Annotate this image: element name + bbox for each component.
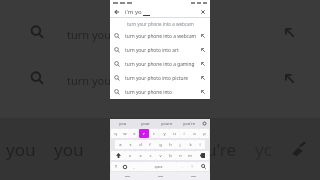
staticText: turn your p [67, 27, 126, 42]
staticText: you [6, 138, 36, 161]
button[interactable]: h [165, 140, 175, 149]
other: Insert suggestion [283, 72, 296, 85]
button[interactable]: r [139, 129, 149, 138]
other: Insert [200, 47, 206, 53]
staticText: r [143, 131, 145, 137]
staticText: q [114, 131, 117, 137]
button[interactable]: Home [144, 172, 177, 180]
button[interactable]: your [134, 119, 156, 128]
staticText: youre [161, 121, 173, 127]
staticText: e [133, 131, 136, 137]
staticText: b [169, 153, 172, 159]
staticText: x [139, 153, 142, 159]
button[interactable]: youre [156, 119, 178, 128]
button[interactable]: v [155, 151, 165, 160]
staticText: n [179, 153, 182, 159]
button[interactable]: y [159, 129, 169, 138]
button[interactable]: turn your phone into a gaming pc [110, 57, 210, 71]
staticText: k [189, 142, 192, 148]
button[interactable]: f [145, 140, 155, 149]
staticText: turn your phone into a gaming pc [125, 61, 200, 68]
button[interactable]: , [129, 162, 139, 171]
staticText: turn your phone into a webcam [125, 33, 200, 40]
staticText: turn your photo into art [125, 47, 200, 54]
button[interactable]: you're [178, 119, 200, 128]
staticText: your [141, 121, 150, 127]
button[interactable]: g [155, 140, 165, 149]
button[interactable]: a [115, 140, 125, 149]
staticText: h [169, 142, 172, 148]
staticText: a [119, 142, 122, 148]
button[interactable]: Recents [177, 172, 210, 180]
button[interactable]: c [145, 151, 155, 160]
button[interactable]: Back [110, 172, 144, 180]
button[interactable]: turn your phone into a webcam [110, 29, 210, 43]
staticText: , [133, 164, 135, 169]
button[interactable]: i [179, 129, 189, 138]
staticText: yc [255, 138, 272, 161]
button[interactable]: t [149, 129, 159, 138]
staticText: turn your photo into picture [125, 75, 200, 82]
staticText: m [188, 153, 192, 159]
staticText: c [149, 153, 152, 159]
staticText: ?1 [114, 165, 118, 169]
button[interactable]: d [135, 140, 145, 149]
staticText: u [173, 131, 176, 137]
other: Insert [200, 61, 206, 67]
staticText: l [199, 142, 201, 148]
button[interactable]: p [199, 129, 209, 138]
button[interactable]: turn your photo into picture [110, 71, 210, 85]
button[interactable]: shift [111, 151, 125, 160]
staticText: z [129, 153, 131, 159]
staticText: w [123, 131, 127, 137]
staticText: t [153, 131, 155, 137]
button[interactable]: x [135, 151, 145, 160]
staticText: g [159, 142, 162, 148]
button[interactable]: j [175, 140, 185, 149]
button[interactable]: Emoji [120, 162, 129, 171]
button[interactable]: Themes [200, 119, 208, 128]
button[interactable]: l [195, 140, 205, 149]
button[interactable]: k [185, 140, 195, 149]
staticText: j [179, 142, 181, 148]
staticText: space [154, 165, 163, 169]
button[interactable]: b [165, 151, 175, 160]
other: Insert suggestion [283, 26, 296, 39]
button[interactable]: you [112, 119, 134, 128]
button[interactable]: turn your photo into art [110, 43, 210, 57]
button[interactable]: u [169, 129, 179, 138]
staticText: f [149, 142, 151, 148]
staticText: turn your phone into [125, 89, 200, 96]
button[interactable]: z [125, 151, 135, 160]
button[interactable]: s [125, 140, 135, 149]
button[interactable]: ?1 [111, 162, 120, 171]
staticText: s [129, 142, 132, 148]
button[interactable]: Back [110, 6, 210, 17]
button[interactable]: n [175, 151, 185, 160]
button[interactable]: Backspace [195, 151, 209, 160]
staticText: ! [191, 164, 193, 169]
staticText: u're [206, 138, 237, 161]
staticText: o [193, 131, 196, 137]
staticText: you [54, 138, 84, 161]
button[interactable]: space [139, 162, 177, 171]
staticText: p [203, 131, 206, 137]
button[interactable]: w [120, 129, 129, 138]
staticText: i [183, 131, 185, 137]
staticText: turn your p [67, 73, 126, 88]
button[interactable]: Clear [200, 9, 206, 15]
button[interactable]: Search [197, 162, 209, 171]
staticText: you [119, 121, 127, 127]
other: Insert [200, 33, 206, 39]
button[interactable]: q [111, 129, 120, 138]
other: Back [114, 9, 120, 15]
other: Insert [200, 89, 206, 95]
button[interactable]: turn your phone into [110, 85, 210, 99]
button[interactable]: ! [187, 162, 197, 171]
button[interactable]: o [189, 129, 199, 138]
staticText: turn your phone into a webcam [127, 21, 194, 27]
button[interactable]: e [129, 129, 139, 138]
staticText: i'm yo [125, 8, 142, 16]
button[interactable]: m [185, 151, 195, 160]
